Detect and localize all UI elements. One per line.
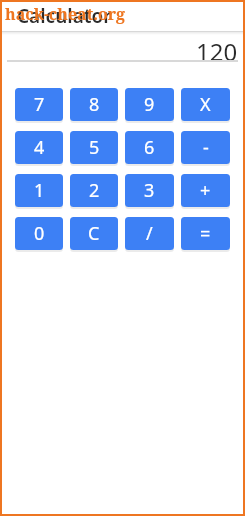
button[interactable]: X [181,88,230,121]
staticText: 5 [89,135,100,160]
staticText: - [203,135,209,160]
staticText: X [200,92,211,117]
button[interactable]: - [181,131,230,164]
button[interactable]: 7 [15,88,63,121]
staticText: 3 [144,178,155,203]
staticText: C [88,221,100,246]
staticText: / [146,221,153,246]
staticText: 2 [89,178,100,203]
staticText: 9 [144,92,155,117]
staticText: 8 [89,92,100,117]
staticText: 120 [196,35,238,60]
staticText: 6 [144,135,155,160]
button[interactable]: = [181,217,230,250]
button[interactable]: 8 [70,88,118,121]
staticText: Calculator [17,3,112,29]
staticText: hack-cheat.org [5,3,126,25]
button[interactable]: + [181,174,230,207]
button[interactable]: C [70,217,118,250]
button[interactable]: 0 [15,217,63,250]
staticText: + [200,178,211,203]
staticText: 1 [34,178,45,203]
button[interactable]: 3 [125,174,174,207]
button[interactable]: 4 [15,131,63,164]
button[interactable]: 1 [15,174,63,207]
staticText: 4 [34,135,45,160]
button[interactable]: 5 [70,131,118,164]
staticText: 0 [34,221,45,246]
button[interactable]: 9 [125,88,174,121]
staticText: = [200,221,211,246]
staticText: 7 [34,92,45,117]
button[interactable]: 6 [125,131,174,164]
button[interactable]: / [125,217,174,250]
button[interactable]: 2 [70,174,118,207]
